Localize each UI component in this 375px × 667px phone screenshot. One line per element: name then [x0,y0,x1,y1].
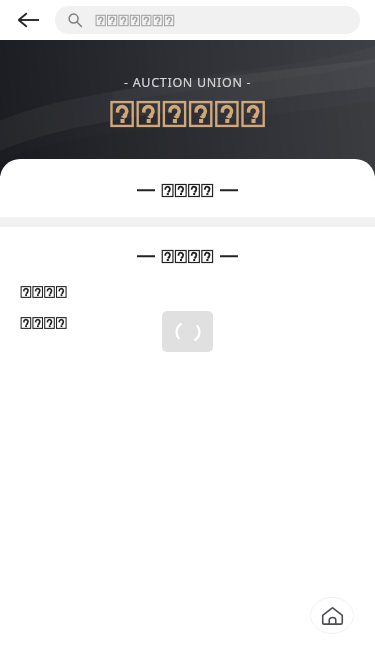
button[interactable]: Back [8,0,48,40]
button[interactable] [55,6,360,34]
staticText: - AUCTION UNION - [124,74,252,91]
button[interactable]: Home [310,597,354,634]
button[interactable]: Lot photo [162,311,213,352]
